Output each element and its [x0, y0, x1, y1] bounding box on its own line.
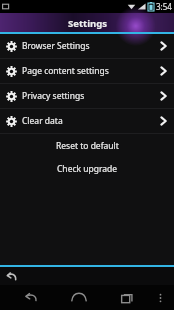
button[interactable]: Privacy settings	[0, 84, 174, 108]
button[interactable]: Reset to default	[0, 134, 174, 157]
staticText: Reset to default	[56, 140, 119, 152]
staticText: Settings	[68, 17, 107, 30]
button[interactable]: Page content settings	[0, 59, 174, 83]
staticText: Privacy settings	[22, 90, 160, 102]
staticText: Check upgrade	[57, 163, 118, 175]
button[interactable]: Check upgrade	[0, 157, 174, 180]
button[interactable]: Recent apps	[103, 285, 152, 310]
button[interactable]: More options	[152, 285, 168, 310]
staticText: Clear data	[22, 115, 160, 127]
button[interactable]: Clear data	[0, 109, 174, 133]
button[interactable]: Home	[54, 285, 103, 310]
button[interactable]: Back	[3, 268, 19, 284]
button[interactable]: Browser Settings	[0, 34, 174, 58]
staticText: Page content settings	[22, 65, 160, 77]
staticText: 3:54	[156, 1, 172, 12]
staticText: Browser Settings	[22, 40, 160, 52]
button[interactable]: Back	[6, 285, 54, 310]
